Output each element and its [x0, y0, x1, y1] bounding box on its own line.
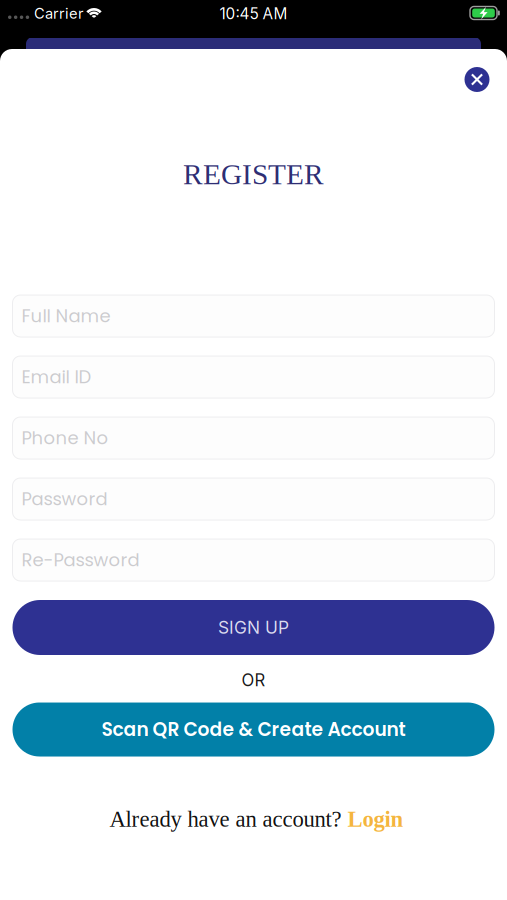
- staticText: Phone No: [21, 425, 108, 451]
- staticText: Email ID: [21, 364, 91, 390]
- staticText: SIGN UP: [218, 617, 289, 638]
- staticText: REGISTER: [183, 158, 324, 190]
- staticText: Scan QR Code & Create Account: [101, 716, 405, 742]
- button[interactable]: Email ID: [12, 356, 494, 398]
- staticText: Full Name: [21, 303, 110, 329]
- button[interactable]: Phone No: [12, 417, 494, 459]
- button[interactable]: Close: [464, 67, 489, 92]
- button[interactable]: Scan QR Code & Create Account: [12, 702, 494, 756]
- staticText: OR: [241, 670, 265, 690]
- staticText: Re-Password: [21, 547, 139, 573]
- staticText: Already have an account?: [109, 806, 341, 832]
- staticText: Login: [347, 806, 403, 832]
- button[interactable]: Password: [12, 478, 494, 520]
- button[interactable]: Re-Password: [12, 539, 494, 581]
- staticText: Carrier: [34, 4, 84, 22]
- button[interactable]: Full Name: [12, 295, 494, 337]
- staticText: Password: [21, 486, 107, 512]
- button[interactable]: Login: [347, 806, 403, 832]
- button[interactable]: SIGN UP: [12, 600, 494, 655]
- staticText: 10:45 AM: [219, 4, 287, 23]
